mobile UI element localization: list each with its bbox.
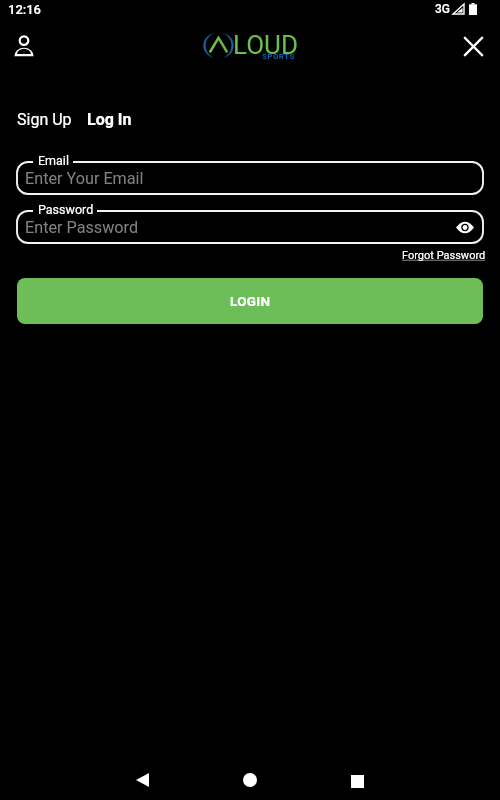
staticText: Password <box>38 202 94 217</box>
staticText: SPORTS <box>262 52 295 61</box>
staticText: Email <box>38 153 69 168</box>
staticText: 3G <box>435 2 450 16</box>
staticText: Enter Your Email <box>25 169 144 188</box>
button[interactable]: Sign Up <box>17 107 72 132</box>
staticText: 12:16 <box>8 2 42 17</box>
staticText: Forgot Password <box>402 249 486 262</box>
button[interactable]: Profile <box>11 33 37 59</box>
button[interactable]: Back <box>120 760 164 800</box>
button[interactable]: Show password <box>451 213 479 241</box>
staticText: LOUD <box>233 30 298 60</box>
button[interactable]: Home <box>228 760 272 800</box>
staticText: Sign Up <box>17 110 72 129</box>
button[interactable]: Recents <box>335 761 379 800</box>
staticText: LOGIN <box>230 293 271 309</box>
staticText: Enter Password <box>25 218 139 237</box>
button[interactable]: Log In <box>87 107 132 132</box>
button[interactable]: LOGIN <box>17 278 483 324</box>
button[interactable]: Email <box>17 148 483 194</box>
button[interactable]: Password <box>17 197 483 243</box>
button[interactable]: Close <box>460 33 486 59</box>
staticText: Log In <box>87 110 132 129</box>
button[interactable]: Forgot Password <box>402 249 486 262</box>
